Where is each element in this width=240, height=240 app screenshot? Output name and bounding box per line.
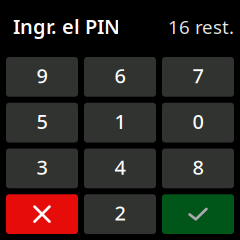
staticText: 16 rest. (168, 14, 234, 39)
button[interactable]: 9 (6, 57, 78, 97)
button[interactable]: 5 (6, 103, 78, 143)
button[interactable]: Confirm (162, 194, 234, 234)
button[interactable]: 3 (6, 148, 78, 188)
staticText: 4 (114, 154, 125, 180)
button[interactable]: 0 (162, 103, 234, 143)
staticText: 5 (36, 108, 47, 134)
button[interactable]: 2 (84, 194, 156, 234)
button[interactable]: 1 (84, 103, 156, 143)
staticText: 8 (192, 154, 203, 180)
staticText: 9 (36, 62, 47, 89)
staticText: Ingr. el PIN (13, 13, 120, 40)
button[interactable]: 6 (84, 57, 156, 97)
button[interactable]: Cancel (6, 194, 78, 234)
staticText: 0 (192, 108, 203, 134)
button[interactable]: 7 (162, 57, 234, 97)
staticText: 1 (114, 108, 125, 134)
staticText: 6 (114, 62, 125, 89)
staticText: 7 (192, 62, 203, 89)
staticText: 3 (36, 154, 47, 180)
button[interactable]: 4 (84, 148, 156, 188)
staticText: 2 (114, 199, 125, 226)
button[interactable]: 8 (162, 148, 234, 188)
